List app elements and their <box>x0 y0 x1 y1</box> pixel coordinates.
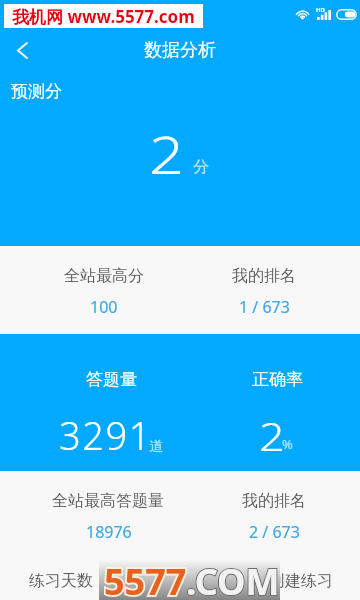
button[interactable]: 答题量 <box>86 369 137 390</box>
staticText: 答题时长 <box>149 571 213 591</box>
button[interactable]: 练习天数 <box>29 571 93 591</box>
staticText: 答题量 <box>86 369 137 390</box>
staticText: 2 / 673 <box>249 521 300 543</box>
staticText: 创建练习 <box>269 571 333 591</box>
staticText: HD <box>316 6 325 14</box>
button[interactable]: 答题时长 <box>149 571 213 591</box>
button[interactable]: 我的排名 <box>242 491 306 511</box>
staticText: .COM <box>104 557 280 600</box>
button[interactable]: 100 <box>90 296 118 318</box>
staticText: 全站最高分 <box>64 266 144 286</box>
staticText: 分 <box>193 157 209 177</box>
staticText: 预测分 <box>11 81 62 102</box>
button[interactable]: Back <box>0 28 44 72</box>
staticText: 数据分析 <box>144 39 216 62</box>
staticText: 正确率 <box>252 369 303 390</box>
staticText: 1 / 673 <box>239 296 290 318</box>
button[interactable]: 创建练习 <box>269 571 333 591</box>
staticText: 3291 <box>59 409 152 461</box>
button[interactable]: 1 / 673 <box>239 296 290 318</box>
button[interactable]: 正确率 <box>252 369 303 390</box>
button[interactable]: 2 / 673 <box>249 521 300 543</box>
button[interactable]: 全站最高答题量 <box>52 491 164 511</box>
staticText: 我的排名 <box>242 491 306 511</box>
staticText: 我的排名 <box>232 266 296 286</box>
staticText: 练习天数 <box>29 571 93 591</box>
staticText: .COM <box>104 557 280 600</box>
staticText: % <box>282 435 293 453</box>
staticText: 18976 <box>86 521 132 543</box>
staticText: 我机网 www.5577.com <box>12 5 195 28</box>
staticText: 道 <box>149 438 163 456</box>
staticText: 5577 <box>104 557 187 600</box>
button[interactable]: 全站最高分 <box>64 266 144 286</box>
staticText: 100 <box>90 296 118 318</box>
button[interactable]: 我的排名 <box>232 266 296 286</box>
button[interactable]: 18976 <box>86 521 132 543</box>
staticText: 5577 <box>104 557 187 600</box>
staticText: 全站最高答题量 <box>52 491 164 511</box>
staticText: 2 <box>149 119 185 188</box>
staticText: 2 <box>259 410 285 462</box>
